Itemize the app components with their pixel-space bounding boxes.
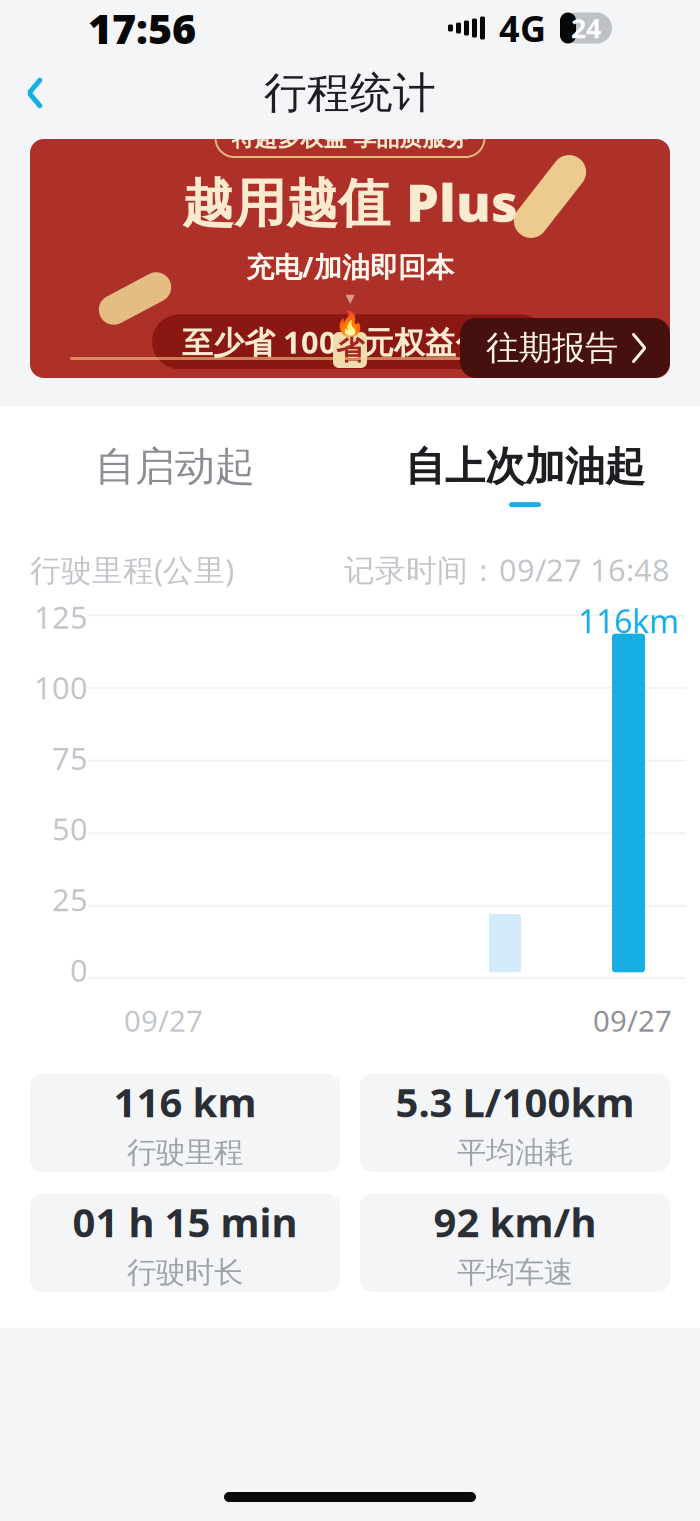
staticText: 平均车速 xyxy=(457,1254,573,1290)
button[interactable]: 自上次加油起 xyxy=(350,430,700,519)
staticText: 越用越值 Plus xyxy=(182,167,518,236)
staticText: 4G xyxy=(499,4,546,52)
button[interactable]: Back xyxy=(0,59,70,127)
staticText: 24 xyxy=(571,10,601,46)
staticText: 75 xyxy=(52,738,88,778)
staticText: 充电/加油即回本 xyxy=(246,248,454,285)
button[interactable]: 往期报告 xyxy=(460,318,670,378)
button[interactable]: 5.3 L/100km xyxy=(360,1074,670,1172)
staticText: 25 xyxy=(52,879,88,920)
staticText: 平均油耗 xyxy=(457,1134,573,1170)
staticText: 09/27 xyxy=(593,1001,672,1040)
staticText: 记录时间：09/27 16:48 xyxy=(344,549,670,590)
staticText: 0 xyxy=(70,949,88,990)
staticText: 5.3 L/100km xyxy=(395,1075,634,1128)
staticText: 行驶里程(公里) xyxy=(30,549,234,590)
button[interactable]: 自启动起 xyxy=(0,430,350,519)
staticText: 17:56 xyxy=(88,1,196,55)
staticText: 100 xyxy=(34,667,88,708)
staticText: 01 h 15 min xyxy=(72,1195,297,1248)
staticText: 116 km xyxy=(113,1075,256,1128)
staticText: 省 xyxy=(336,333,364,367)
staticText: 50 xyxy=(52,808,88,849)
staticText: 特超多权益 享品质服务 xyxy=(231,124,468,152)
staticText: 行程统计 xyxy=(264,67,436,119)
staticText: 往期报告 xyxy=(486,327,618,368)
staticText: 125 xyxy=(34,596,88,637)
staticText: 09/27 xyxy=(124,1001,203,1040)
button[interactable]: 116 km xyxy=(30,1074,340,1172)
staticText: ▾ xyxy=(345,287,354,308)
button[interactable]: 01 h 15 min xyxy=(30,1194,340,1292)
button[interactable]: 92 km/h xyxy=(360,1194,670,1292)
staticText: 行驶里程 xyxy=(127,1134,243,1170)
staticText: 自上次加油起 xyxy=(405,442,645,491)
staticText: 92 km/h xyxy=(433,1195,596,1248)
staticText: 自启动起 xyxy=(95,442,255,491)
staticText: 行驶时长 xyxy=(127,1254,243,1290)
staticText: 🔥 xyxy=(335,310,365,338)
staticText: 至少省 1000 元权益价值 xyxy=(182,321,518,362)
staticText: 116km xyxy=(578,600,679,642)
